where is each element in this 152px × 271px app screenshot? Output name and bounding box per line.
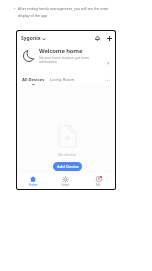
button[interactable]: Me — [82, 176, 115, 187]
button[interactable]: Sygonix — [21, 35, 46, 42]
button[interactable]: Welcome home — [23, 47, 110, 64]
button[interactable]: Home — [17, 176, 49, 187]
button[interactable]: Living Room — [50, 77, 75, 83]
staticText: Home — [29, 183, 38, 187]
staticText: • — [14, 6, 16, 11]
staticText: Add Device — [57, 164, 79, 170]
button[interactable]: More options — [104, 77, 110, 83]
staticText: Welcome home — [39, 47, 83, 55]
button[interactable]: Smart — [49, 177, 82, 187]
staticText: Me — [96, 183, 101, 187]
staticText: All Devices — [22, 77, 45, 83]
staticText: Set your home location, get more informa… — [39, 56, 90, 64]
button[interactable]: Notifications — [94, 35, 101, 42]
staticText: No device — [58, 152, 77, 157]
staticText: Smart — [61, 183, 70, 187]
button[interactable]: All Devices — [22, 77, 45, 85]
button[interactable]: Add device — [106, 35, 113, 42]
staticText: After exiting family management, you wil… — [18, 6, 109, 18]
staticText: Sygonix — [21, 35, 41, 42]
button[interactable]: Add Device — [53, 162, 82, 171]
